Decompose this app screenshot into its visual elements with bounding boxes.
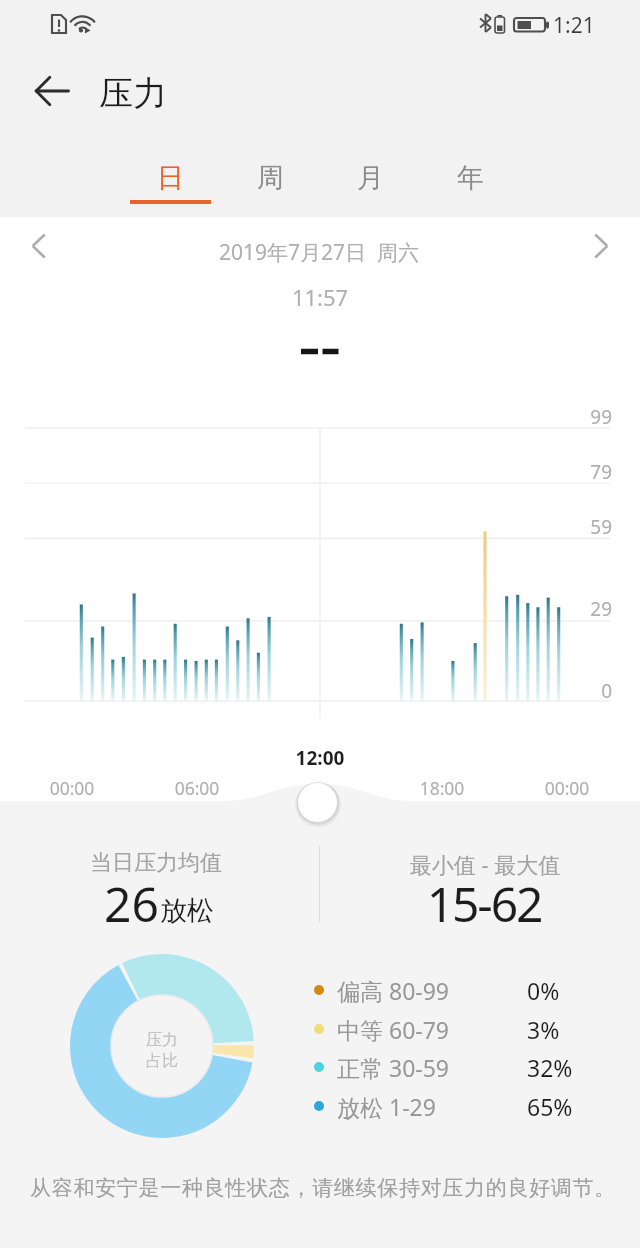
staticText: 00:00 — [507, 776, 627, 800]
staticText: 59 — [551, 514, 612, 540]
button[interactable]: 年 — [425, 161, 515, 221]
button[interactable]: Previous day — [17, 224, 61, 268]
button[interactable]: 放松 1-29 — [314, 1088, 436, 1124]
staticText: 26 — [104, 871, 159, 936]
staticText: 从容和安宁是一种良性状态，请继续保持对压力的良好调节。 — [3, 1175, 640, 1201]
staticText: 1:21 — [553, 11, 595, 40]
button[interactable]: Scrub handle — [298, 783, 337, 822]
staticText: 放松 — [160, 894, 214, 928]
staticText: 2019年7月27日 周六 — [109, 238, 529, 267]
button[interactable]: 中等 60-79 — [314, 1011, 450, 1047]
staticText: 周 — [257, 161, 284, 195]
staticText: 11:57 — [220, 282, 420, 312]
staticText: 99 — [551, 404, 612, 430]
staticText: 3% — [527, 1014, 560, 1045]
button[interactable]: 正常 30-59 — [314, 1049, 450, 1085]
staticText: 放松 1-29 — [337, 1091, 436, 1122]
button[interactable]: Next day — [579, 224, 623, 268]
staticText: 0 — [551, 678, 612, 704]
staticText: 65% — [527, 1091, 573, 1122]
staticText: 06:00 — [137, 776, 257, 800]
staticText: 当日压力均值 — [26, 849, 286, 877]
staticText: 偏高 80-99 — [337, 975, 450, 1006]
staticText: 15-62 — [334, 871, 634, 936]
button[interactable]: 偏高 80-99 — [314, 972, 450, 1008]
staticText: 月 — [357, 161, 384, 195]
staticText: 最小值 - 最大值 — [335, 849, 635, 879]
button[interactable]: 日 — [125, 161, 215, 221]
staticText: 18:00 — [382, 776, 502, 800]
staticText: 12:00 — [240, 745, 400, 771]
button[interactable]: 月 — [325, 161, 415, 221]
staticText: 29 — [551, 596, 612, 622]
staticText: 32% — [527, 1052, 573, 1083]
staticText: 占比 — [146, 1051, 178, 1071]
staticText: 中等 60-79 — [337, 1014, 450, 1045]
button[interactable]: Back — [21, 60, 83, 122]
staticText: 日 — [157, 161, 184, 195]
staticText: 压力 — [146, 1030, 178, 1050]
staticText: 正常 30-59 — [337, 1052, 450, 1083]
staticText: 年 — [457, 161, 484, 195]
staticText: 压力 — [99, 72, 167, 115]
staticText: 79 — [551, 459, 612, 485]
staticText: 0% — [527, 975, 560, 1006]
staticText: 00:00 — [12, 776, 132, 800]
button[interactable]: 周 — [225, 161, 315, 221]
